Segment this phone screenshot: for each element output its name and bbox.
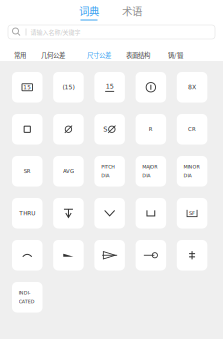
staticText: INDI- [19,290,31,296]
staticText: 15 [106,83,114,90]
button[interactable]: 词典 [71,3,107,21]
staticText: 15 [23,84,31,90]
staticText: 尺寸公差 [87,50,111,60]
staticText: DIA [101,173,109,178]
button[interactable]: 铸/锻 [168,49,183,60]
staticText: 铸/锻 [168,50,183,60]
staticText: 词典 [79,3,99,18]
staticText: 几何公差 [41,50,65,60]
button[interactable]: 术语 [114,3,150,21]
button[interactable]: CR [177,114,207,144]
button[interactable] [94,198,125,228]
button[interactable] [12,240,42,270]
staticText: SF [189,210,195,216]
staticText: PITCH [101,164,115,170]
button[interactable]: SR [12,156,42,186]
button[interactable]: S [94,114,125,144]
button[interactable]: 尺寸公差 [87,49,126,60]
button[interactable]: INDI- [12,282,42,312]
button[interactable]: 15 [94,72,125,102]
button[interactable]: (15) [53,72,84,102]
staticText: SR [24,168,31,174]
staticText: MINOR [184,164,200,170]
button[interactable]: SF [177,198,207,228]
staticText: 常用 [14,50,26,60]
button[interactable]: 几何公差 [41,49,87,60]
button[interactable] [136,198,166,228]
button[interactable] [53,114,84,144]
button[interactable] [12,114,42,144]
button[interactable] [136,72,166,102]
button[interactable]: 15 [12,72,42,102]
button[interactable] [94,240,125,270]
button[interactable] [53,240,84,270]
staticText: DIA [184,173,192,178]
staticText: (15) [62,84,74,91]
button[interactable] [177,240,207,270]
button[interactable]: Search [8,25,215,39]
button[interactable]: AVG [53,156,84,186]
staticText: 8X [188,84,196,91]
button[interactable]: THRU [12,198,42,228]
button[interactable]: MAJOR [136,156,166,186]
staticText: 请输入名称/关键字 [30,28,80,36]
staticText: MAJOR [142,164,157,170]
button[interactable]: R [136,114,166,144]
staticText: 表面结构 [126,50,150,60]
button[interactable]: 表面结构 [126,49,168,60]
button[interactable]: PITCH [94,156,125,186]
staticText: THRU [19,210,35,217]
staticText: DIA [142,173,150,178]
staticText: 术语 [122,3,142,18]
button[interactable]: 常用 [14,49,41,60]
button[interactable]: 8X [177,72,207,102]
button[interactable] [136,240,166,270]
staticText: S [103,125,107,133]
button[interactable] [53,198,84,228]
staticText: CR [188,126,196,132]
button[interactable]: MINOR [177,156,207,186]
staticText: CATED [19,299,35,304]
staticText: AVG [63,168,74,174]
staticText: R [149,126,153,132]
